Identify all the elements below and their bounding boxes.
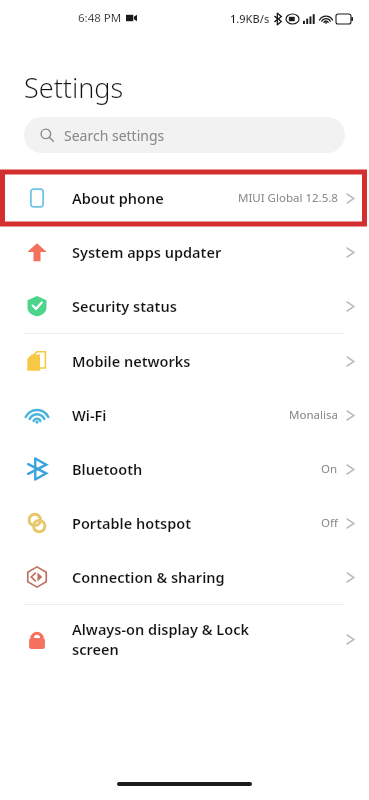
button[interactable]: Wi-Fi — [0, 388, 369, 442]
staticText: Bluetooth — [72, 459, 321, 479]
button[interactable]: Always-on display & Lock screen — [0, 605, 369, 673]
staticText: Security status — [72, 296, 346, 316]
button[interactable]: Portable hotspot — [0, 496, 369, 550]
other: System apps updater — [346, 245, 355, 260]
button[interactable]: Search settings — [24, 117, 345, 153]
staticText: System apps updater — [72, 242, 346, 262]
staticText: Wi-Fi — [72, 405, 289, 425]
staticText: Settings — [24, 69, 124, 106]
staticText: Always-on display & Lock screen — [72, 619, 346, 659]
other: Mobile networks — [346, 354, 355, 369]
staticText: Portable hotspot — [72, 513, 321, 533]
staticText: Monalisa — [289, 407, 338, 423]
button[interactable]: Mobile networks — [0, 334, 369, 388]
other: About phone — [346, 191, 355, 206]
button[interactable]: Connection & sharing — [0, 550, 369, 604]
other: Wi-Fi — [346, 408, 355, 423]
other: Portable hotspot — [346, 516, 355, 531]
button[interactable]: Security status — [0, 279, 369, 333]
other: Always-on display & Lock screen — [346, 632, 355, 647]
button[interactable]: About phone — [0, 171, 369, 225]
staticText: 1.9KB/s — [230, 11, 270, 26]
staticText: Mobile networks — [72, 351, 346, 371]
staticText: Connection & sharing — [72, 567, 346, 587]
other: Bluetooth — [346, 462, 355, 477]
staticText: Search settings — [64, 126, 165, 145]
button[interactable]: Bluetooth — [0, 442, 369, 496]
other: Security status — [346, 299, 355, 314]
staticText: Off — [321, 515, 338, 531]
staticText: About phone — [72, 188, 238, 208]
staticText: 6:48 PM — [78, 10, 122, 26]
staticText: MIUI Global 12.5.8 — [238, 190, 338, 206]
button[interactable]: System apps updater — [0, 225, 369, 279]
staticText: On — [321, 461, 338, 477]
other: Connection & sharing — [346, 570, 355, 585]
